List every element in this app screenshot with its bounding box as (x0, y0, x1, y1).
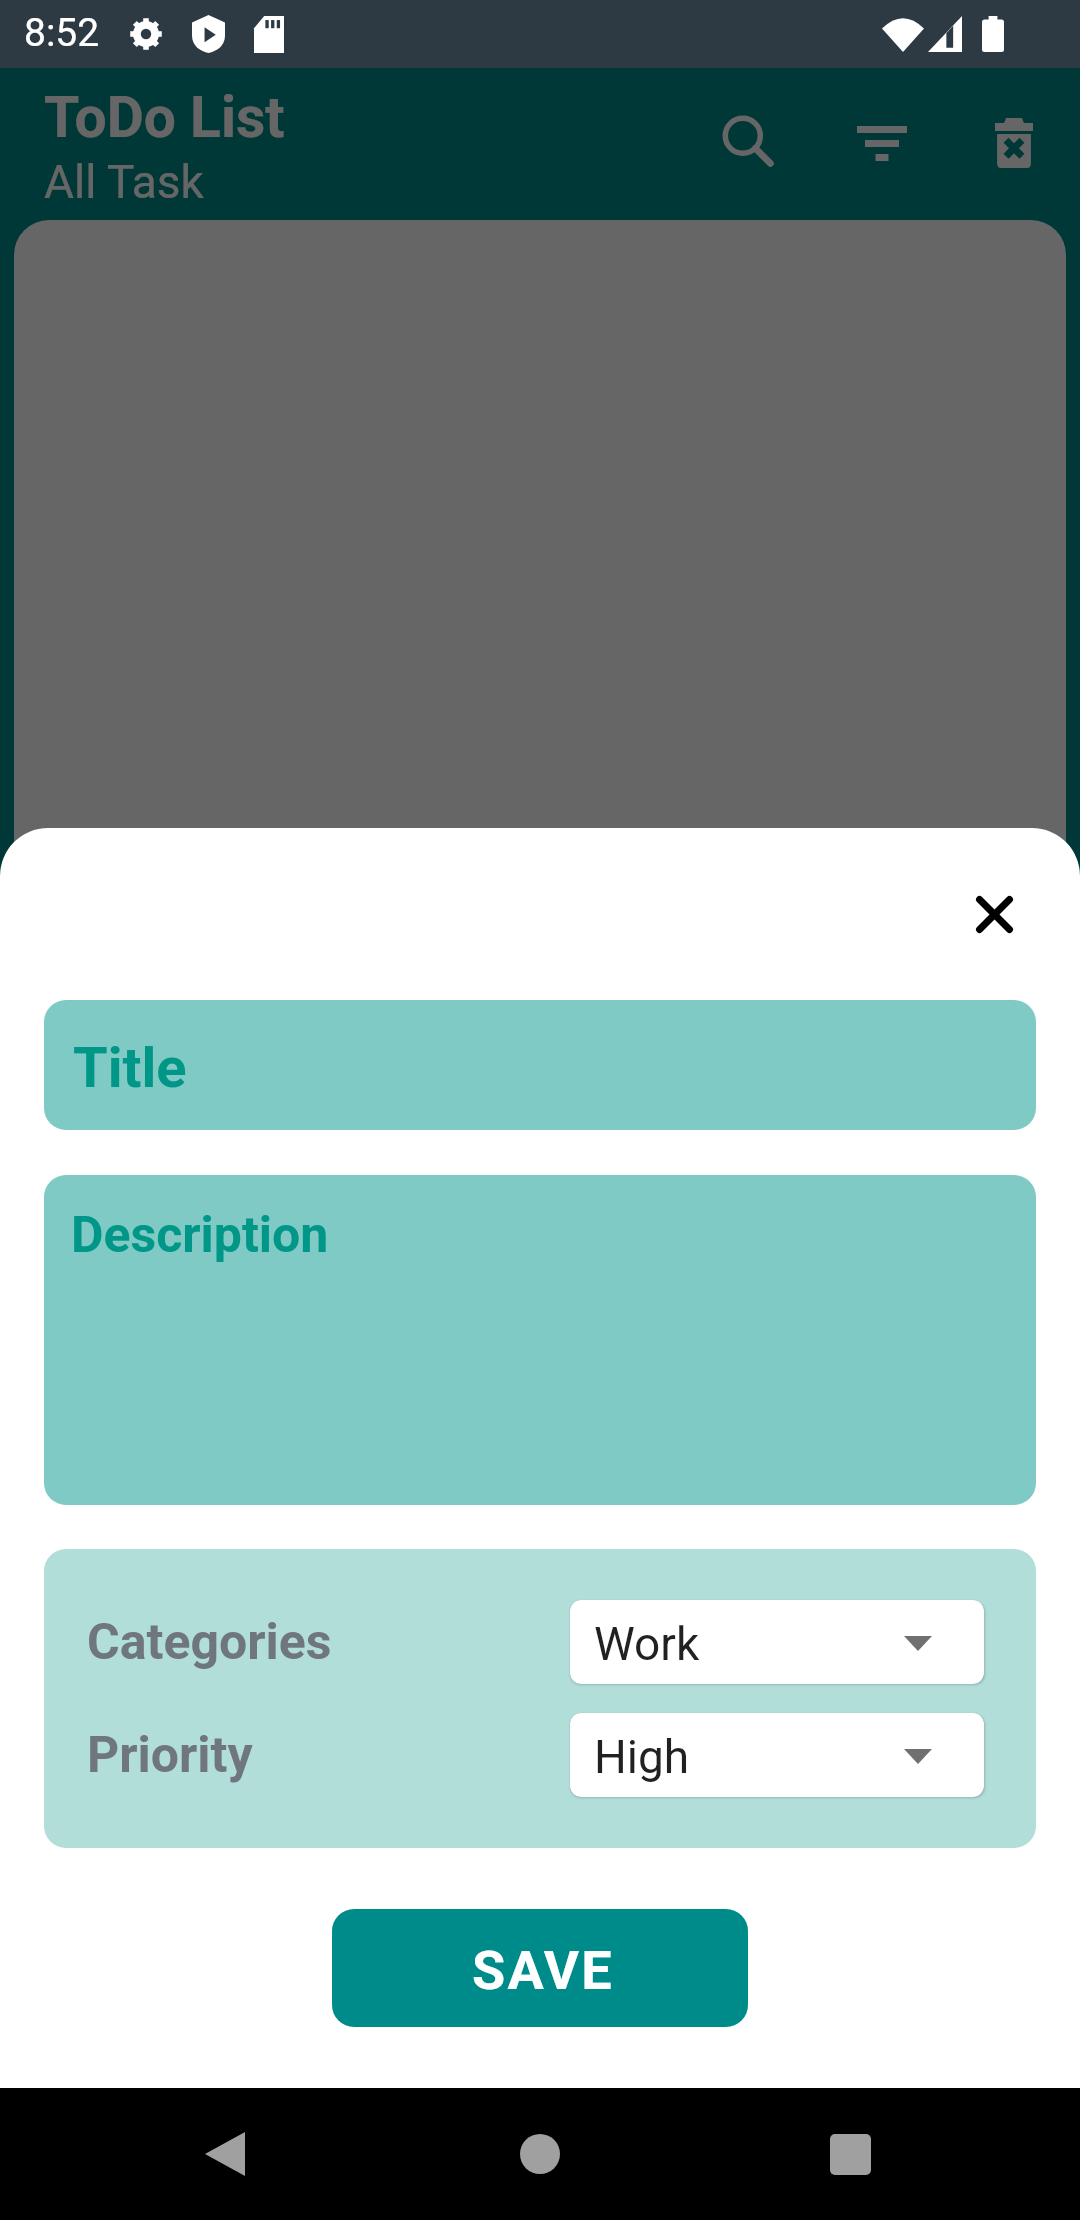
button[interactable]: Description (44, 1175, 1036, 1505)
button[interactable]: Work (570, 1600, 984, 1684)
button[interactable]: Close (954, 874, 1034, 954)
button[interactable]: Filter (834, 95, 930, 191)
staticText: ToDo List (44, 84, 285, 151)
staticText: Title (73, 1035, 187, 1101)
button[interactable]: Recents (780, 2088, 920, 2220)
button[interactable]: SAVE (332, 1909, 748, 2027)
staticText: SAVE (472, 1939, 614, 2002)
staticText: Description (71, 1206, 329, 1265)
button[interactable]: Title (44, 1000, 1036, 1130)
staticText: High (594, 1730, 690, 1784)
button[interactable]: Back (155, 2088, 295, 2220)
staticText: Priority (87, 1726, 253, 1785)
button[interactable]: High (570, 1713, 984, 1797)
button[interactable]: Delete all (966, 95, 1062, 191)
button[interactable]: Search (700, 93, 796, 189)
staticText: Categories (87, 1613, 332, 1672)
button[interactable]: Home (470, 2088, 610, 2220)
staticText: Work (594, 1617, 700, 1671)
staticText: 8:52 (24, 10, 100, 56)
staticText: All Task (44, 155, 204, 209)
